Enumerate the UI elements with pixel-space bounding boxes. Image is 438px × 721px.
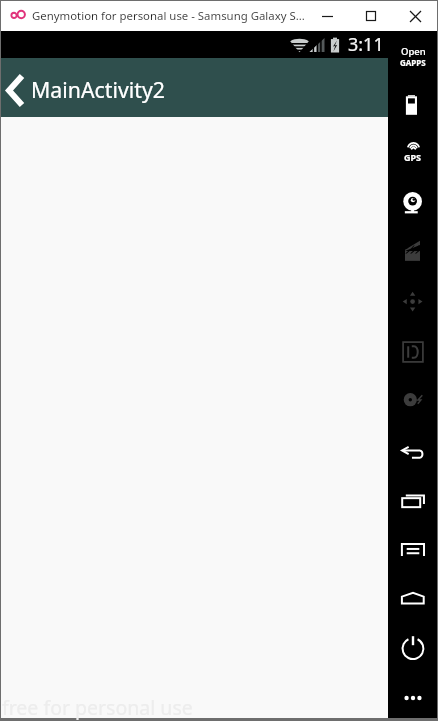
- button[interactable]: Disk IO: [388, 376, 437, 425]
- staticText: Genymotion for personal use - Samsung Ga…: [32, 8, 305, 24]
- button[interactable]: Screen record: [388, 228, 437, 277]
- button[interactable]: Navigate up: [4, 58, 26, 117]
- staticText: 3:11: [348, 32, 384, 57]
- staticText: GAPPS: [400, 57, 426, 68]
- staticText: free for personal use: [2, 694, 193, 721]
- button[interactable]: Back: [388, 427, 437, 476]
- button[interactable]: GPS: [388, 127, 437, 176]
- button[interactable]: Menu: [388, 525, 437, 574]
- staticText: MainActivity2: [31, 75, 165, 104]
- button[interactable]: Open GAPPS: [388, 32, 437, 81]
- button[interactable]: Minimize: [305, 1, 349, 31]
- button[interactable]: Close: [393, 1, 437, 31]
- button[interactable]: Identifiers: [388, 327, 437, 376]
- button[interactable]: Maximize: [349, 1, 393, 31]
- button[interactable]: Battery: [388, 80, 437, 129]
- button[interactable]: Camera: [388, 177, 437, 226]
- button[interactable]: Home: [388, 574, 437, 623]
- staticText: GPS: [404, 151, 422, 163]
- button[interactable]: Recent apps: [388, 476, 437, 525]
- button[interactable]: Power: [388, 624, 437, 673]
- button[interactable]: Move: [388, 277, 437, 326]
- button[interactable]: More: [388, 673, 437, 721]
- staticText: Open: [401, 45, 426, 58]
